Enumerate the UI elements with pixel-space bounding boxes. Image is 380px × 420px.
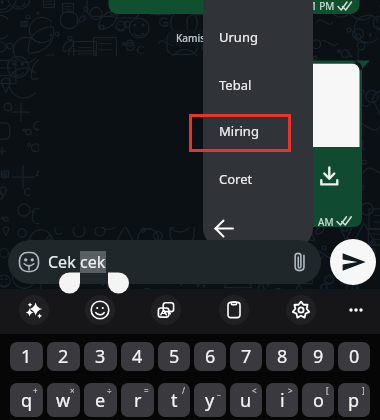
button[interactable]: 0 — [338, 342, 370, 371]
button[interactable]: More — [341, 295, 371, 325]
staticText: q — [21, 388, 33, 413]
button[interactable]: t — [158, 383, 190, 417]
staticText: 0 — [349, 344, 360, 369]
staticText: u — [240, 388, 252, 413]
staticText: 5 — [169, 344, 180, 369]
button[interactable]: Clipboard — [219, 295, 249, 325]
staticText: Urung — [219, 28, 258, 46]
button[interactable]: Attach — [289, 251, 311, 273]
staticText: 9 — [313, 344, 324, 369]
button[interactable]: y — [194, 383, 226, 417]
button[interactable]: p — [338, 383, 370, 417]
button[interactable]: e — [84, 383, 117, 417]
staticText: Miring — [219, 122, 259, 140]
staticText: Cek — [48, 251, 80, 273]
button[interactable]: Tebal — [203, 67, 313, 103]
staticText: Coret — [219, 170, 253, 188]
button[interactable]: Kamis — [168, 30, 210, 46]
staticText: 7 — [241, 344, 252, 369]
button[interactable]: Back — [213, 216, 238, 241]
staticText: / — [182, 385, 185, 396]
staticText: > — [288, 385, 293, 396]
staticText: o — [313, 388, 324, 413]
button[interactable]: 4 — [121, 342, 154, 371]
staticText: ] — [362, 385, 365, 396]
button[interactable]: q — [10, 383, 43, 417]
button[interactable]: Send — [330, 239, 376, 285]
staticText: _ — [217, 385, 221, 396]
button[interactable]: Urung — [203, 19, 313, 55]
button[interactable]: Miring — [203, 113, 313, 149]
button[interactable]: Coret — [203, 161, 313, 197]
staticText: < — [252, 385, 257, 396]
button[interactable]: Translate — [151, 295, 181, 325]
staticText: 6 — [205, 344, 216, 369]
button[interactable]: Cek — [8, 240, 321, 284]
staticText: y — [205, 388, 215, 413]
staticText: 2 — [58, 344, 69, 369]
button[interactable]: r — [121, 383, 154, 417]
button[interactable]: 6 — [194, 342, 226, 371]
staticText: 1 — [21, 344, 32, 369]
staticText: 4 — [132, 344, 143, 369]
button[interactable]: 9 — [302, 342, 334, 371]
staticText: ÷ — [107, 385, 112, 396]
staticText: w — [56, 388, 71, 413]
staticText: [ — [326, 385, 329, 396]
button[interactable]: 5 — [158, 342, 190, 371]
button[interactable]: 8 — [266, 342, 298, 371]
staticText: × — [70, 385, 75, 396]
staticText: t — [171, 388, 178, 413]
staticText: 1 PM — [311, 0, 335, 13]
staticText: e — [95, 388, 106, 413]
button[interactable]: 7 — [230, 342, 262, 371]
staticText: i — [280, 388, 285, 413]
button[interactable]: u — [230, 383, 262, 417]
staticText: Kamis — [176, 31, 206, 45]
button[interactable]: Settings — [286, 295, 316, 325]
staticText: = — [144, 385, 149, 396]
button[interactable]: 3 — [84, 342, 117, 371]
button[interactable]: Emoji — [85, 295, 115, 325]
staticText: 8 — [277, 344, 288, 369]
staticText: + — [33, 385, 38, 396]
staticText: p — [348, 388, 360, 413]
button[interactable]: 2 — [47, 342, 80, 371]
staticText: r — [134, 388, 142, 413]
button[interactable]: w — [47, 383, 80, 417]
staticText: cek — [80, 251, 106, 273]
button[interactable]: AI — [19, 295, 49, 325]
button[interactable]: o — [302, 383, 334, 417]
button[interactable]: 1 — [10, 342, 43, 371]
staticText: AM — [318, 215, 334, 229]
staticText: Tebal — [219, 76, 252, 94]
button[interactable]: i — [266, 383, 298, 417]
staticText: 3 — [95, 344, 106, 369]
